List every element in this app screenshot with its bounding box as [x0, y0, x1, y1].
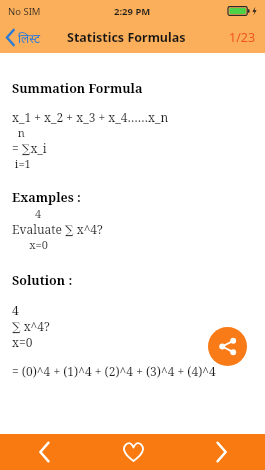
button[interactable]: 1/23: [229, 29, 265, 46]
staticText: = (0)^4 + (1)^4 + (2)^4 + (3)^4 + (4)^4: [12, 363, 216, 379]
staticText: 4: [12, 302, 19, 318]
button[interactable]: Previous: [0, 434, 89, 470]
staticText: 2:29 PM: [114, 5, 151, 18]
staticText: = ∑x_i: [12, 140, 47, 156]
button[interactable]: Favorite: [89, 434, 177, 470]
staticText: x_1 + x_2 + x_3 + x_4……x_n: [12, 109, 169, 125]
staticText: i=1: [12, 156, 31, 171]
staticText: x=0: [12, 334, 33, 350]
staticText: n: [12, 125, 25, 140]
button[interactable]: Next: [177, 434, 265, 470]
staticText: 4: [12, 206, 42, 221]
staticText: Statistics Formulas: [67, 29, 186, 46]
staticText: लिस्ट: [18, 30, 40, 46]
button[interactable]: Share: [208, 327, 247, 366]
button[interactable]: लिस्ट: [0, 22, 46, 53]
staticText: ∑ x^4?: [12, 318, 50, 334]
staticText: Summation Formula: [12, 80, 143, 97]
staticText: Examples :: [12, 189, 81, 206]
staticText: No SIM: [8, 5, 41, 18]
staticText: x=0: [12, 237, 48, 252]
staticText: Evaluate ∑ x^4?: [12, 221, 103, 237]
staticText: Solution :: [12, 272, 73, 289]
